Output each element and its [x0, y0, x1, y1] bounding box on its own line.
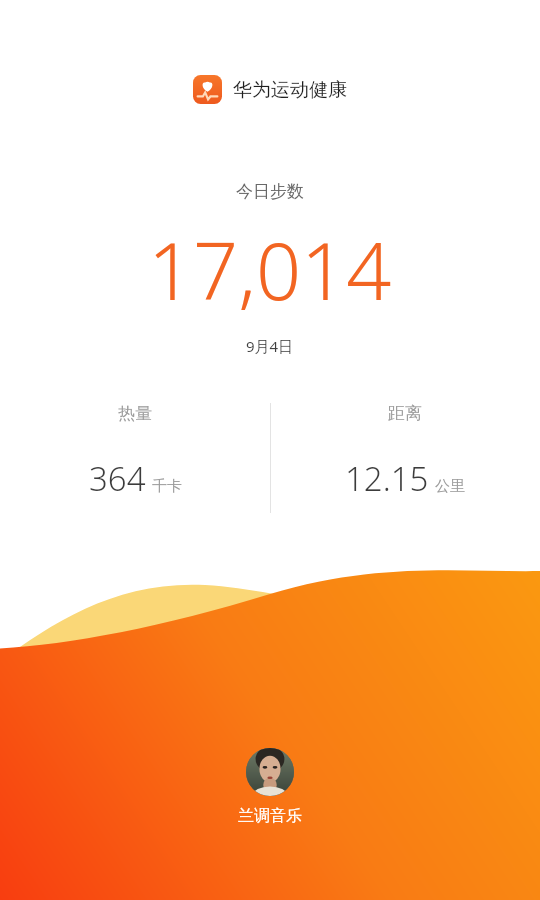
- button[interactable]: 距离: [270, 403, 540, 501]
- staticText: 今日步数: [236, 181, 304, 202]
- staticText: 千卡: [152, 477, 182, 496]
- staticText: 公里: [435, 477, 465, 496]
- other: 兰调音乐 avatar: [246, 748, 294, 796]
- staticText: 热量: [118, 403, 152, 424]
- staticText: 17,014: [148, 216, 392, 324]
- staticText: 兰调音乐: [238, 806, 302, 826]
- button[interactable]: Huawei Health: [0, 75, 540, 104]
- staticText: 9月4日: [246, 336, 294, 356]
- staticText: 12.15: [345, 456, 429, 501]
- staticText: 364: [89, 456, 146, 501]
- staticText: 华为运动健康: [233, 78, 347, 102]
- staticText: 距离: [388, 403, 422, 424]
- button[interactable]: 热量: [0, 403, 270, 501]
- other: Huawei Health: [193, 75, 222, 104]
- button[interactable]: 兰调音乐 avatar: [238, 748, 302, 826]
